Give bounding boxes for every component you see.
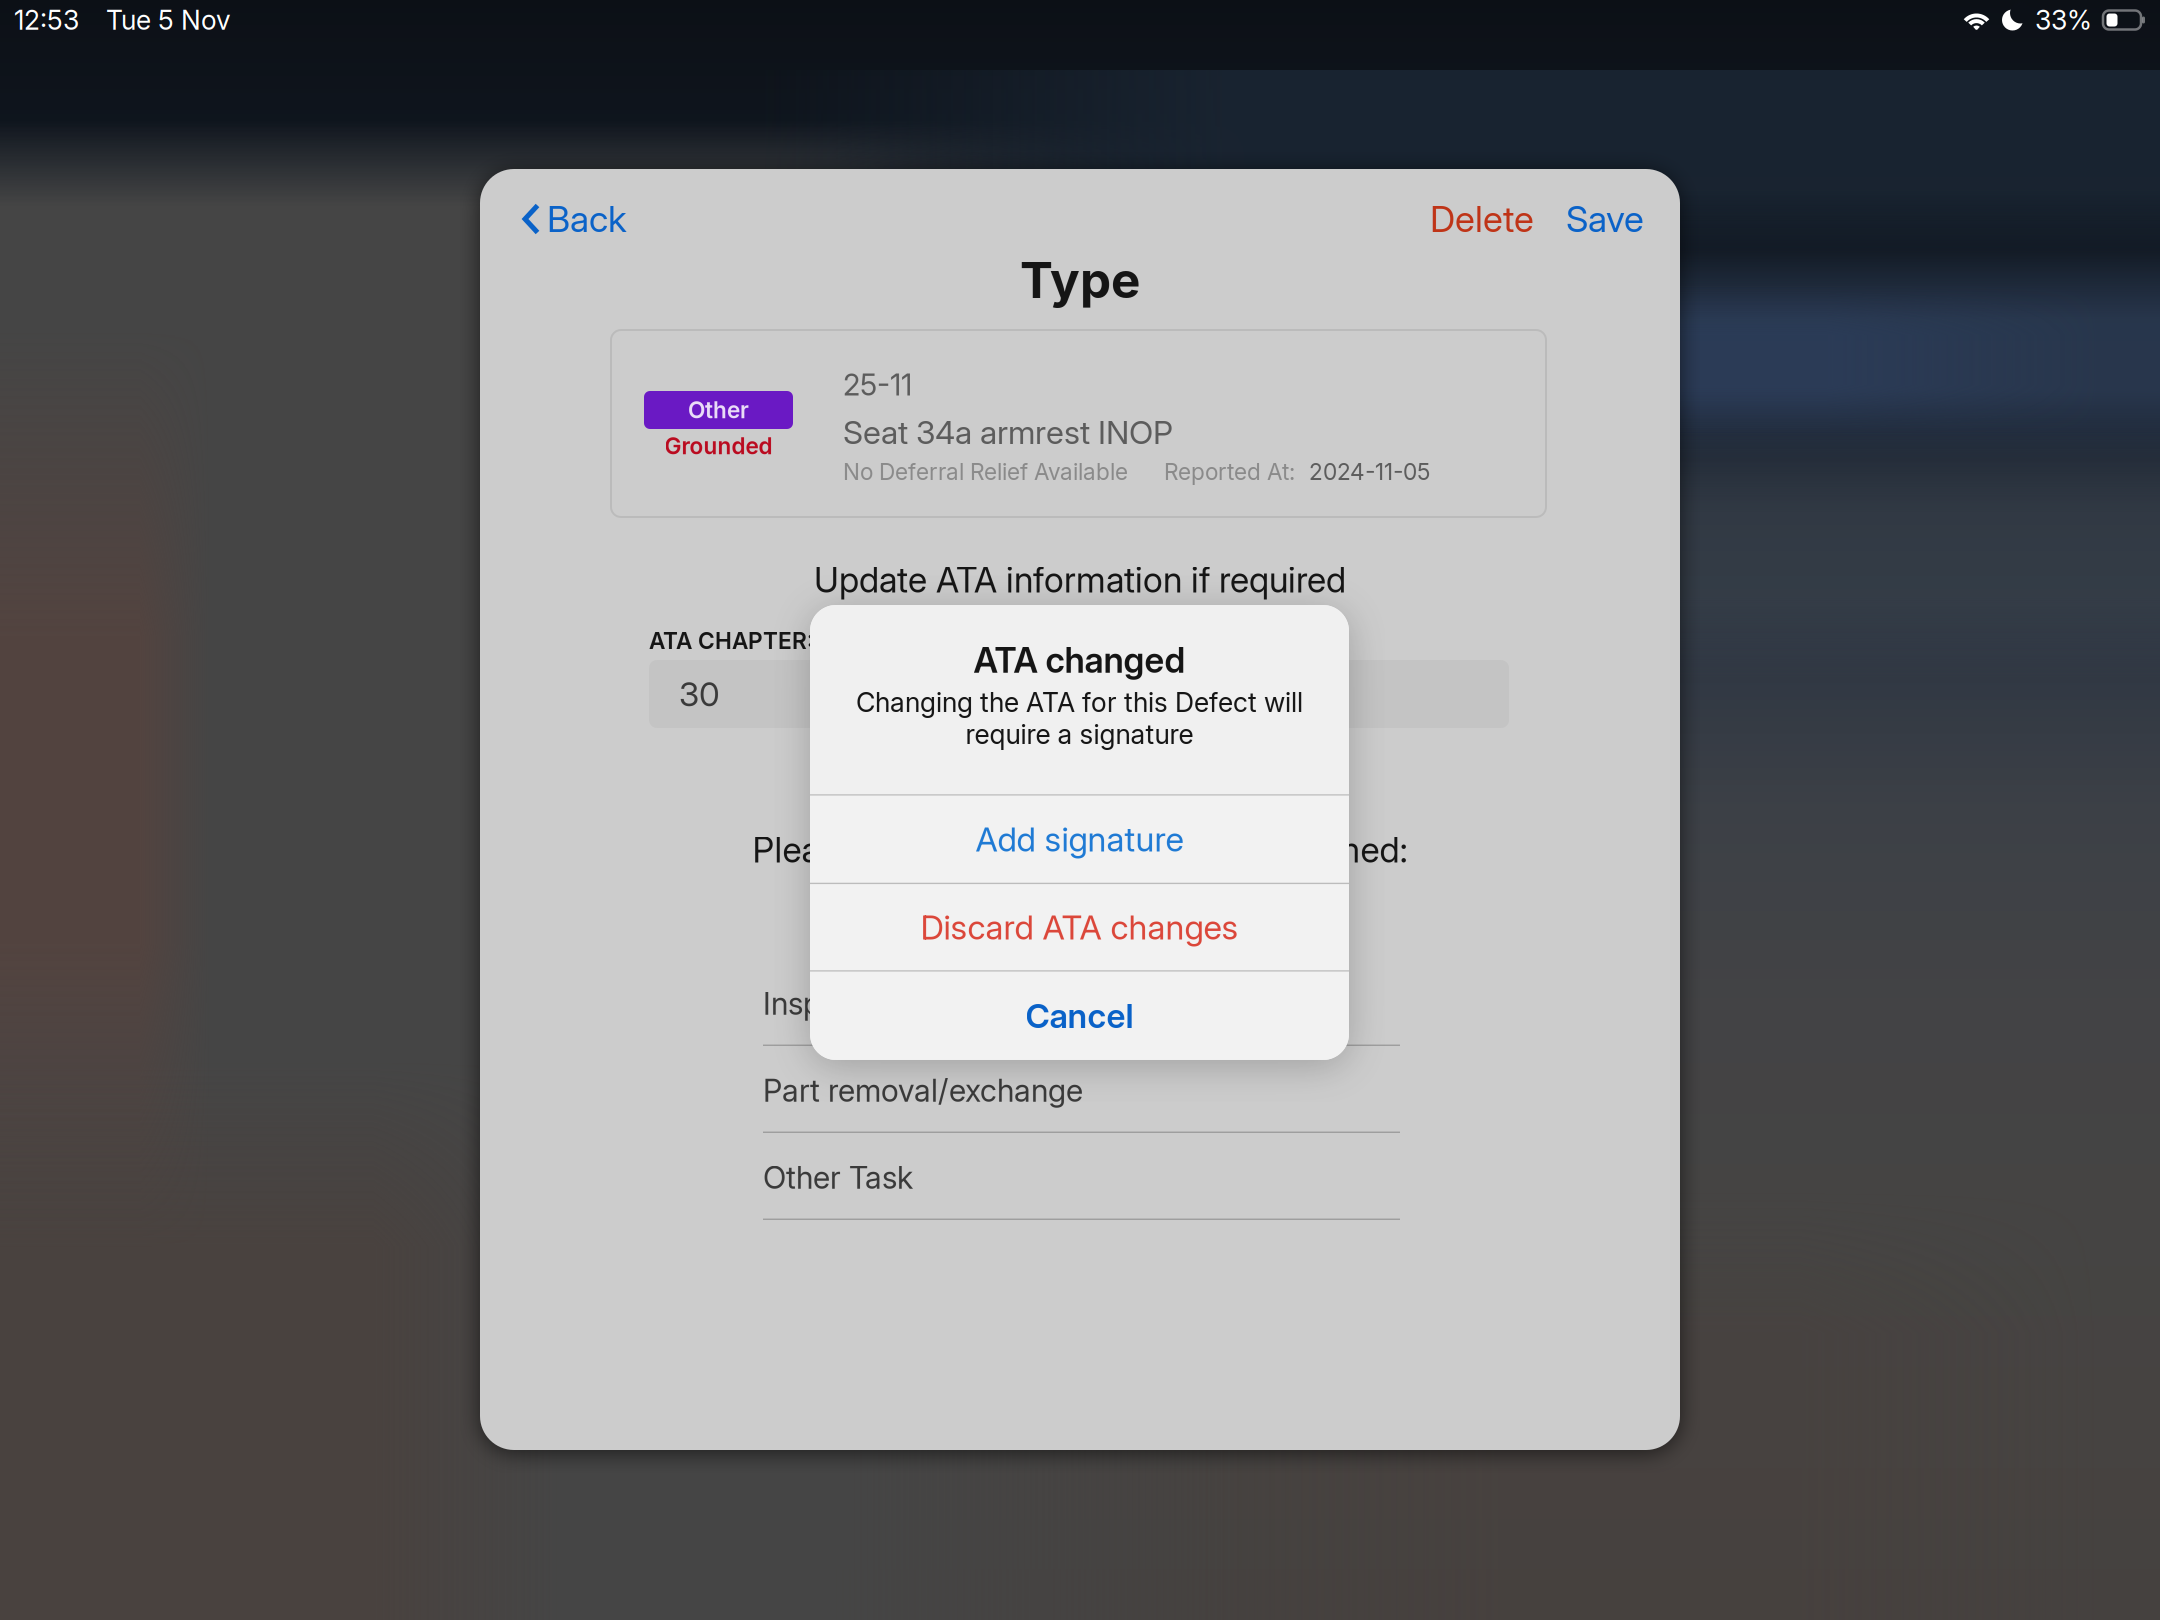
staticText: 30 — [679, 674, 720, 714]
staticText: No Deferral Relief Available — [843, 458, 1128, 485]
button[interactable]: Inspection — [763, 959, 1400, 1046]
staticText: ATA CHAPTER: — [649, 627, 814, 654]
staticText: Reported At: — [1164, 458, 1295, 485]
button[interactable]: Save — [1566, 197, 1644, 241]
button[interactable]: Delete — [1430, 197, 1534, 241]
staticText: Update ATA information if required — [814, 559, 1346, 601]
staticText: Add signature — [975, 819, 1183, 859]
button[interactable]: Back — [521, 197, 627, 241]
staticText: Type — [1020, 250, 1140, 310]
staticText: Back — [547, 197, 627, 241]
staticText: Tue 5 Nov — [106, 4, 231, 36]
button[interactable]: Other Task — [763, 1133, 1400, 1220]
staticText: Part removal/exchange — [763, 1072, 1083, 1109]
staticText: require a signature — [965, 718, 1193, 750]
button[interactable]: Part removal/exchange — [763, 1046, 1400, 1133]
staticText: Please select the task that was performe… — [752, 829, 1407, 871]
staticText: 33% — [2035, 4, 2092, 36]
staticText: Seat 34a armrest INOP — [843, 413, 1173, 452]
staticText: 12:53 — [14, 4, 79, 36]
button[interactable]: Cancel — [810, 972, 1349, 1060]
staticText: Inspection — [763, 985, 907, 1022]
staticText: Cancel — [1025, 996, 1133, 1036]
button[interactable]: Discard ATA changes — [810, 884, 1349, 970]
staticText: 2024-11-05 — [1309, 458, 1430, 485]
staticText: 25-11 — [843, 367, 912, 402]
button[interactable]: Add signature — [810, 796, 1349, 883]
staticText: Delete — [1430, 197, 1534, 241]
staticText: Grounded — [664, 432, 772, 460]
staticText: Other Task — [763, 1159, 913, 1196]
staticText: ATA changed — [973, 639, 1185, 681]
staticText: Changing the ATA for this Defect will — [856, 686, 1303, 718]
staticText: Save — [1566, 197, 1644, 241]
staticText: Discard ATA changes — [920, 907, 1238, 947]
staticText: Other — [688, 396, 749, 424]
